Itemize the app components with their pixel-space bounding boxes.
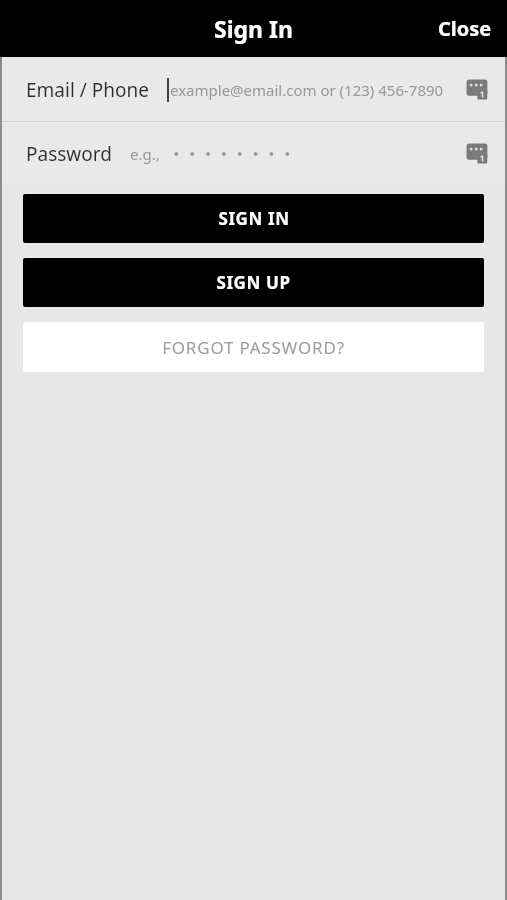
button[interactable]: SIGN IN	[23, 194, 484, 243]
button[interactable]: SIGN UP	[23, 258, 484, 307]
button[interactable]: FORGOT PASSWORD?	[23, 322, 484, 372]
staticText: SIGN IN	[218, 207, 290, 230]
button[interactable]: Close	[423, 5, 507, 52]
other: Autofill	[465, 77, 491, 103]
staticText: Email / Phone	[26, 77, 149, 103]
staticText: e.g.,	[130, 144, 160, 164]
staticText: example@email.com or (123) 456-7890	[170, 80, 444, 100]
staticText: SIGN UP	[216, 271, 291, 294]
staticText: Close	[438, 15, 492, 42]
other: Autofill	[465, 141, 491, 167]
staticText: FORGOT PASSWORD?	[162, 336, 345, 359]
staticText: Password	[26, 141, 112, 167]
staticText: Sign In	[214, 13, 293, 44]
button[interactable]: Email / Phone	[2, 59, 505, 121]
button[interactable]: Password	[2, 122, 505, 185]
